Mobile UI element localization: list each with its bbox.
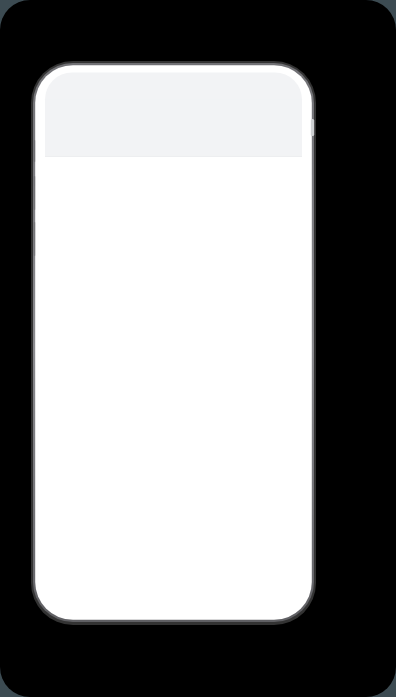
button[interactable]: Phone screen <box>0 0 396 697</box>
